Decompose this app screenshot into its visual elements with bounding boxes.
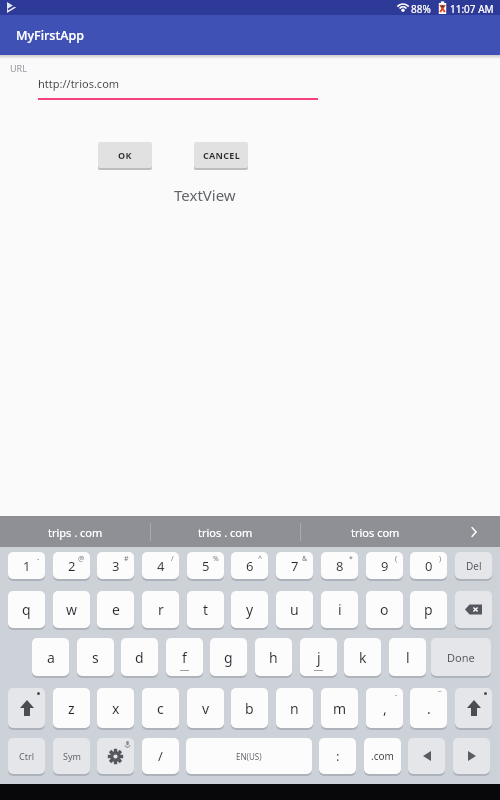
button[interactable]: j [300,638,337,676]
staticText: z [68,699,75,718]
staticText: ¯ [438,690,442,700]
button[interactable]: w [53,591,90,628]
staticText: 5 [202,557,210,575]
button[interactable]: n [276,688,313,728]
button[interactable] [38,70,318,100]
button[interactable] [8,688,45,728]
button[interactable] [455,688,492,728]
button[interactable] [408,738,445,774]
staticText: URL [10,62,27,74]
button[interactable]: c [142,688,179,728]
button[interactable]: trios . com [150,517,300,547]
button[interactable]: Del [455,552,492,579]
staticText: j [317,648,321,667]
button[interactable]: u [276,591,313,628]
button[interactable]: 3 [97,552,134,579]
staticText: / [171,554,174,564]
staticText: u [290,600,299,619]
staticText: trips . com [48,525,103,540]
staticText: t [203,600,209,619]
button[interactable]: y [231,591,268,628]
button[interactable]: i [321,591,358,628]
staticText: f [182,648,187,667]
button[interactable]: 4 [142,552,179,579]
button[interactable]: . [410,688,447,728]
button[interactable]: o [366,591,403,628]
staticText: 6 [246,557,254,575]
button[interactable]: Ctrl [8,738,45,774]
staticText: o [380,600,389,619]
staticText: q [22,600,31,619]
button[interactable]: h [255,638,292,676]
button[interactable]: Sym [53,738,90,774]
button[interactable]: , [366,688,403,728]
staticText: trios . com [198,525,253,540]
button[interactable]: f [166,638,203,676]
staticText: g [224,648,233,667]
button[interactable]: .com [364,738,401,774]
button[interactable]: Done [431,638,491,676]
button[interactable]: EN(US) [186,738,312,774]
button[interactable]: g [210,638,247,676]
button[interactable]: s [77,638,114,676]
staticText: x [112,699,120,718]
staticText: 1 [23,557,31,575]
staticText: * [349,554,353,564]
button[interactable]: 8 [321,552,358,579]
staticText: h [269,648,278,667]
button[interactable]: 5 [187,552,224,579]
button[interactable]: v [187,688,224,728]
staticText: d [135,648,144,667]
button[interactable]: r [142,591,179,628]
staticText: 9 [381,557,389,575]
button[interactable]: x [97,688,134,728]
button[interactable]: p [410,591,447,628]
button[interactable]: trips . com [0,517,150,547]
button[interactable]: 7 [276,552,313,579]
staticText: , [383,699,387,718]
button[interactable]: l [389,638,426,676]
staticText: y [246,600,254,619]
staticText: TextView [174,185,236,205]
button[interactable] [97,738,134,774]
button[interactable]: 0 [410,552,447,579]
button[interactable]: OK [98,142,152,168]
button[interactable]: CANCEL [194,142,248,168]
button[interactable]: e [97,591,134,628]
button[interactable] [453,738,490,774]
staticText: EN(US) [236,751,262,762]
button[interactable]: / [142,738,179,774]
staticText: r [158,600,164,619]
button[interactable]: a [32,638,69,676]
staticText: b [245,699,254,718]
button[interactable]: d [121,638,158,676]
button[interactable] [455,591,492,628]
staticText: ) [439,554,442,564]
button[interactable]: k [344,638,381,676]
staticText: m [333,699,347,718]
staticText: @ [78,554,85,564]
button[interactable]: t [187,591,224,628]
button[interactable]: z [53,688,90,728]
staticText: w [66,600,78,619]
staticText: l [406,648,410,667]
staticText: - [395,690,398,700]
staticText: trios com [351,525,400,540]
button[interactable]: q [8,591,45,628]
staticText: - [37,554,40,564]
button[interactable]: 6 [231,552,268,579]
staticText: 8 [336,557,344,575]
staticText: a [47,648,55,667]
button[interactable]: 1 [8,552,45,579]
button[interactable]: b [231,688,268,728]
button[interactable]: 2 [53,552,90,579]
button[interactable] [0,517,500,547]
button[interactable]: trios com [300,517,450,547]
staticText: e [112,600,120,619]
button[interactable]: m [321,688,358,728]
button[interactable]: : [319,738,356,774]
staticText: n [290,699,299,718]
staticText: / [158,747,163,765]
staticText: CANCEL [203,149,240,161]
button[interactable]: 9 [366,552,403,579]
